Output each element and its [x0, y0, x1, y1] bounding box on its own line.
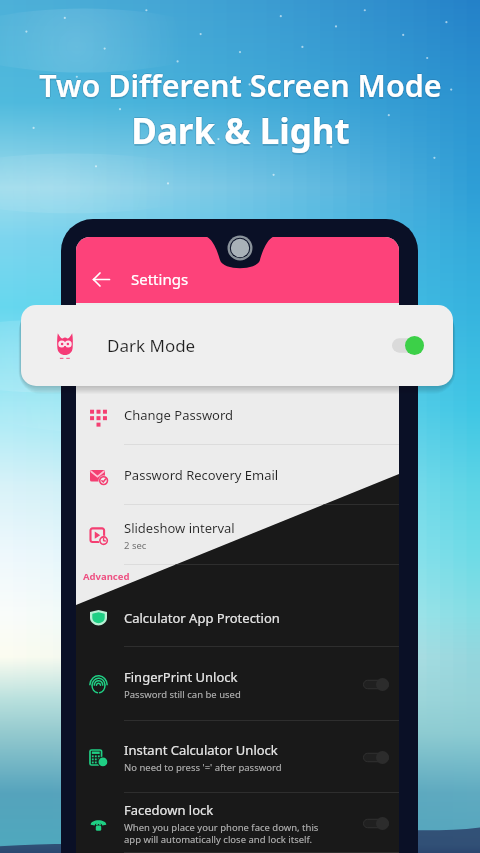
button[interactable]: Change Password: [76, 385, 399, 445]
staticText: No need to press '=' after password: [124, 761, 282, 774]
staticText: Dark & Light: [131, 109, 350, 157]
staticText: Advanced: [83, 570, 130, 583]
staticText: Password still can be used: [124, 688, 241, 701]
staticText: Dark Mode: [107, 334, 196, 357]
button[interactable]: Password Recovery Email: [76, 445, 399, 505]
button[interactable]: Facedown lock: [76, 793, 399, 853]
button[interactable]: FingerPrint Unlock: [76, 647, 399, 721]
button[interactable]: Calculator App Protection: [76, 588, 399, 647]
button[interactable]: Back: [84, 262, 118, 296]
staticText: Password still can be used: [124, 688, 241, 701]
staticText: Advanced: [83, 570, 130, 583]
staticText: Facedown lock: [124, 801, 214, 819]
button[interactable]: Change Password: [76, 385, 399, 445]
staticText: 2 sec: [124, 539, 147, 552]
button[interactable]: Calculator App Protection: [76, 588, 399, 647]
staticText: No need to press '=' after password: [124, 761, 282, 774]
staticText: Two Different Screen Mode: [39, 63, 442, 105]
staticText: Settings: [131, 269, 189, 289]
staticText: When you place your phone face down, thi…: [124, 821, 319, 846]
staticText: Slideshow interval: [124, 519, 235, 537]
staticText: Change Password: [124, 406, 234, 424]
button[interactable]: Dark Mode: [21, 305, 453, 386]
button[interactable]: Instant Calculator Unlock: [76, 721, 399, 793]
staticText: Instant Calculator Unlock: [124, 741, 278, 759]
staticText: Change Password: [124, 406, 234, 424]
staticText: FingerPrint Unlock: [124, 668, 238, 686]
staticText: Slideshow interval: [124, 519, 235, 537]
staticText: Calculator App Protection: [124, 609, 280, 627]
staticText: When you place your phone face down, thi…: [124, 821, 319, 846]
staticText: Password Recovery Email: [124, 466, 279, 484]
button[interactable]: Instant Calculator Unlock: [76, 721, 399, 793]
button[interactable]: FingerPrint Unlock: [76, 647, 399, 721]
button[interactable]: Slideshow interval: [76, 505, 399, 565]
staticText: FingerPrint Unlock: [124, 668, 238, 686]
staticText: Dark & Light: [131, 106, 350, 154]
staticText: Instant Calculator Unlock: [124, 741, 278, 759]
staticText: Two Different Screen Mode: [39, 66, 442, 108]
staticText: Two Different Screen Mode: [38, 64, 441, 106]
staticText: Password Recovery Email: [124, 466, 279, 484]
staticText: 2 sec: [124, 539, 147, 552]
staticText: Dark & Light: [132, 107, 351, 155]
button[interactable]: Slideshow interval: [76, 505, 399, 565]
staticText: Facedown lock: [124, 801, 214, 819]
button[interactable]: Password Recovery Email: [76, 445, 399, 505]
button[interactable]: Facedown lock: [76, 793, 399, 853]
staticText: Dark & Light: [131, 107, 350, 155]
staticText: Calculator App Protection: [124, 609, 280, 627]
staticText: Two Different Screen Mode: [39, 64, 442, 106]
staticText: Two Different Screen Mode: [40, 64, 443, 106]
staticText: Dark & Light: [130, 107, 349, 155]
